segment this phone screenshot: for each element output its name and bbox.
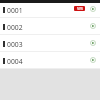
staticText: 0001 — [7, 6, 23, 15]
button[interactable]: 0003 — [0, 35, 100, 51]
staticText: 0004 — [7, 57, 23, 66]
button[interactable]: Play — [90, 23, 96, 29]
button[interactable]: NEW — [74, 6, 85, 11]
button[interactable]: 0002 — [0, 18, 100, 34]
staticText: 0002 — [7, 23, 23, 32]
staticText: NEW — [77, 7, 83, 11]
button[interactable]: 0001 — [0, 1, 100, 17]
button[interactable]: Play — [90, 57, 96, 63]
button[interactable]: Play — [90, 6, 96, 12]
staticText: 0003 — [7, 40, 23, 49]
button[interactable]: Play — [90, 40, 96, 46]
button[interactable]: 0004 — [0, 52, 100, 68]
